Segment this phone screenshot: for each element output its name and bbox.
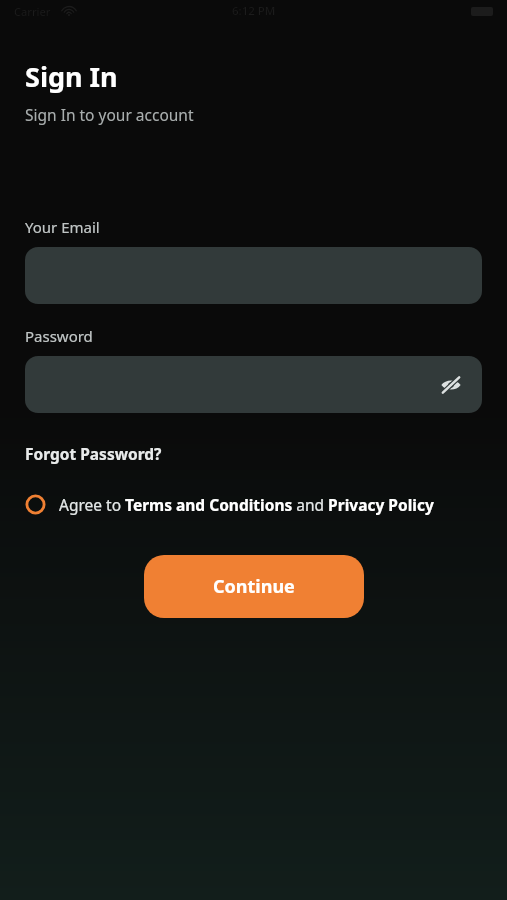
staticText: Forgot Password? [25, 443, 162, 464]
button[interactable]: Show password [25, 356, 482, 413]
staticText: Your Email [25, 217, 100, 237]
staticText: Password [25, 326, 93, 346]
staticText: Carrier [14, 4, 51, 19]
staticText: Sign In [25, 58, 118, 95]
staticText: Agree to Terms and Conditions and Privac… [59, 494, 434, 515]
button[interactable]: Forgot Password? [25, 441, 162, 466]
button[interactable]: Continue [144, 555, 364, 618]
button[interactable]: Show password [434, 368, 468, 402]
button[interactable] [25, 247, 482, 304]
button[interactable]: Agree to Terms and Conditions and Privac… [0, 492, 507, 517]
staticText: 6:12 PM [232, 3, 276, 19]
staticText: Continue [213, 574, 295, 599]
staticText: Sign In to your account [25, 104, 194, 125]
